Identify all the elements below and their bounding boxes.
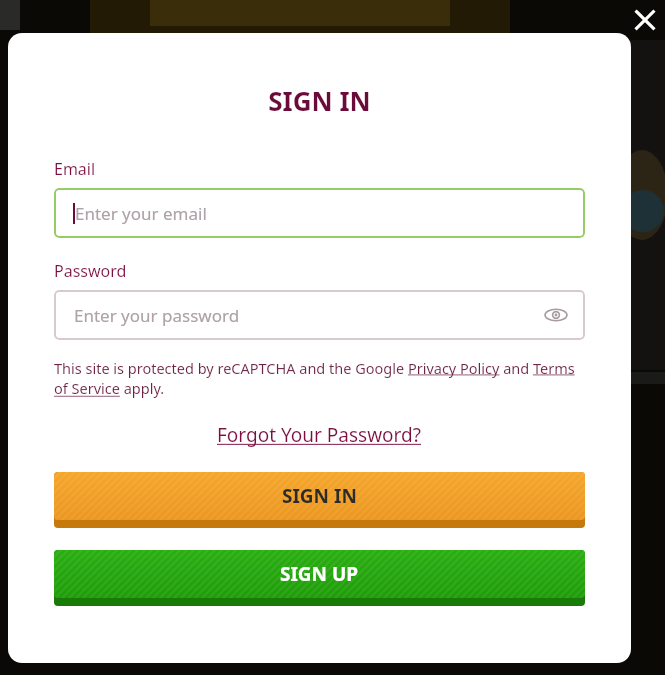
staticText: Enter your email	[75, 202, 207, 225]
button[interactable]: SIGN IN	[54, 472, 585, 528]
button[interactable]: Enter your email	[54, 188, 585, 238]
button[interactable]: Close	[625, 0, 665, 40]
staticText: This site is protected by reCAPTCHA and …	[54, 358, 585, 399]
button[interactable]: SIGN UP	[54, 550, 585, 606]
button[interactable]: Show password	[541, 300, 571, 330]
staticText: Enter your password	[74, 304, 240, 327]
staticText: SIGN UP	[280, 561, 359, 587]
staticText: Password	[54, 260, 127, 282]
button[interactable]: Enter your password	[54, 290, 585, 340]
staticText: Email	[54, 158, 96, 180]
staticText: SIGN IN	[282, 483, 357, 509]
staticText: SIGN IN	[8, 83, 631, 118]
button[interactable]: Forgot Your Password?	[213, 420, 426, 450]
